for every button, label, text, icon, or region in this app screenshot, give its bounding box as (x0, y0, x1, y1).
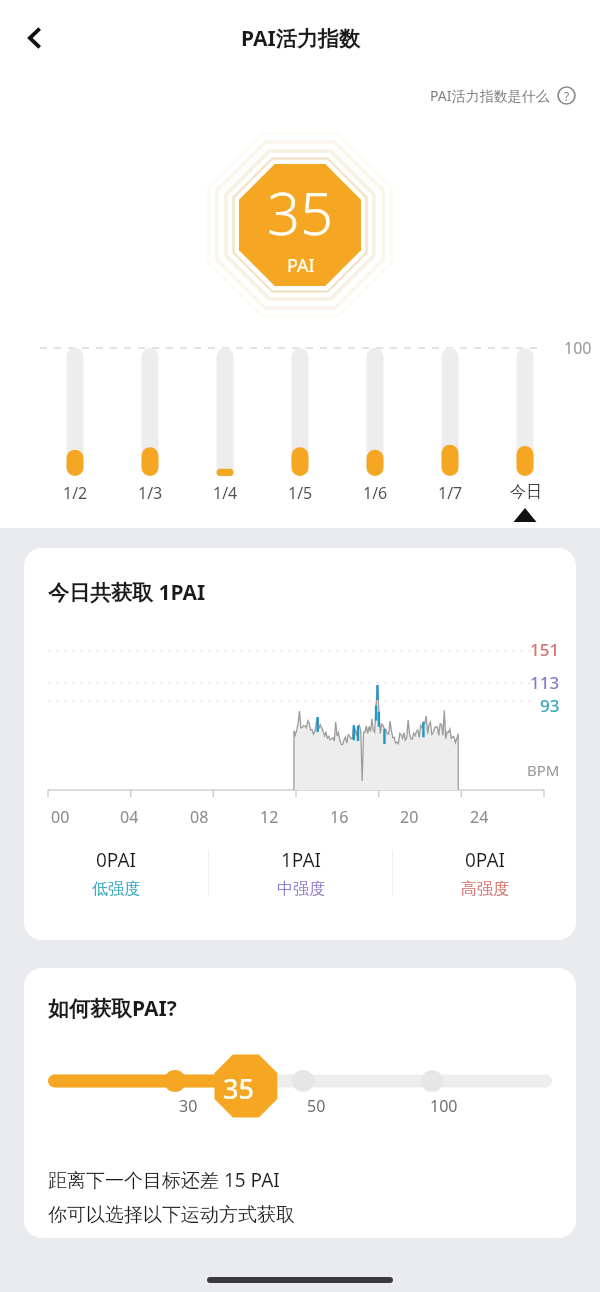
staticText: BPM (527, 760, 560, 780)
staticText: 35 (267, 173, 334, 252)
button[interactable]: PAI活力指数是什么 (424, 80, 582, 111)
button[interactable]: 1PAI (209, 830, 392, 916)
staticText: 你可以选择以下运动方式获取 (48, 1203, 295, 1227)
staticText: 12 (260, 806, 279, 828)
button[interactable]: 如何获取PAI? (24, 968, 576, 1238)
staticText: 24 (470, 806, 489, 828)
staticText: 35 (223, 1070, 254, 1107)
button[interactable]: 1/4 (188, 482, 263, 504)
button[interactable]: 0PAI (24, 830, 208, 916)
staticText: ? (564, 88, 570, 104)
staticText: 高强度 (461, 879, 509, 899)
button[interactable]: 30 (24, 1069, 576, 1127)
button[interactable]: 1/7 (413, 482, 488, 504)
staticText: 20 (400, 806, 419, 828)
staticText: 1/3 (138, 482, 163, 504)
button[interactable]: 今日 (488, 482, 563, 502)
staticText: 0PAI (96, 847, 136, 873)
staticText: PAI活力指数 (241, 24, 360, 53)
button[interactable]: Back (6, 9, 64, 67)
staticText: 08 (190, 806, 209, 828)
staticText: 中强度 (277, 879, 325, 899)
staticText: 距离下一个目标还差 15 PAI (48, 1167, 280, 1193)
staticText: 0PAI (465, 847, 505, 873)
button[interactable]: 今日共获取 1PAI (24, 548, 576, 940)
button[interactable]: 1/6 (338, 482, 413, 504)
staticText: 1/6 (363, 482, 388, 504)
staticText: 如何获取PAI? (48, 994, 177, 1023)
staticText: 1/7 (438, 482, 463, 504)
staticText: PAI (287, 253, 315, 278)
button[interactable]: 1/3 (113, 482, 188, 504)
staticText: 93 (540, 694, 560, 717)
staticText: 151 (530, 638, 560, 661)
staticText: 1/4 (213, 482, 238, 504)
button[interactable]: 1/2 (37, 482, 113, 504)
staticText: 今日共获取 1PAI (48, 578, 206, 607)
staticText: 今日 (510, 482, 542, 502)
staticText: PAI活力指数是什么 (430, 86, 550, 105)
staticText: 100 (564, 337, 592, 359)
staticText: 04 (120, 806, 139, 828)
staticText: 113 (530, 671, 560, 694)
staticText: 1PAI (281, 847, 321, 873)
button[interactable]: 1/5 (263, 482, 338, 504)
button[interactable]: 0PAI (393, 830, 576, 916)
staticText: 1/5 (288, 482, 313, 504)
staticText: 50 (307, 1095, 326, 1117)
staticText: 00 (51, 806, 70, 828)
staticText: 30 (179, 1095, 198, 1117)
staticText: 100 (430, 1095, 458, 1117)
staticText: 低强度 (92, 879, 140, 899)
staticText: 1/2 (63, 482, 88, 504)
staticText: 16 (330, 806, 349, 828)
